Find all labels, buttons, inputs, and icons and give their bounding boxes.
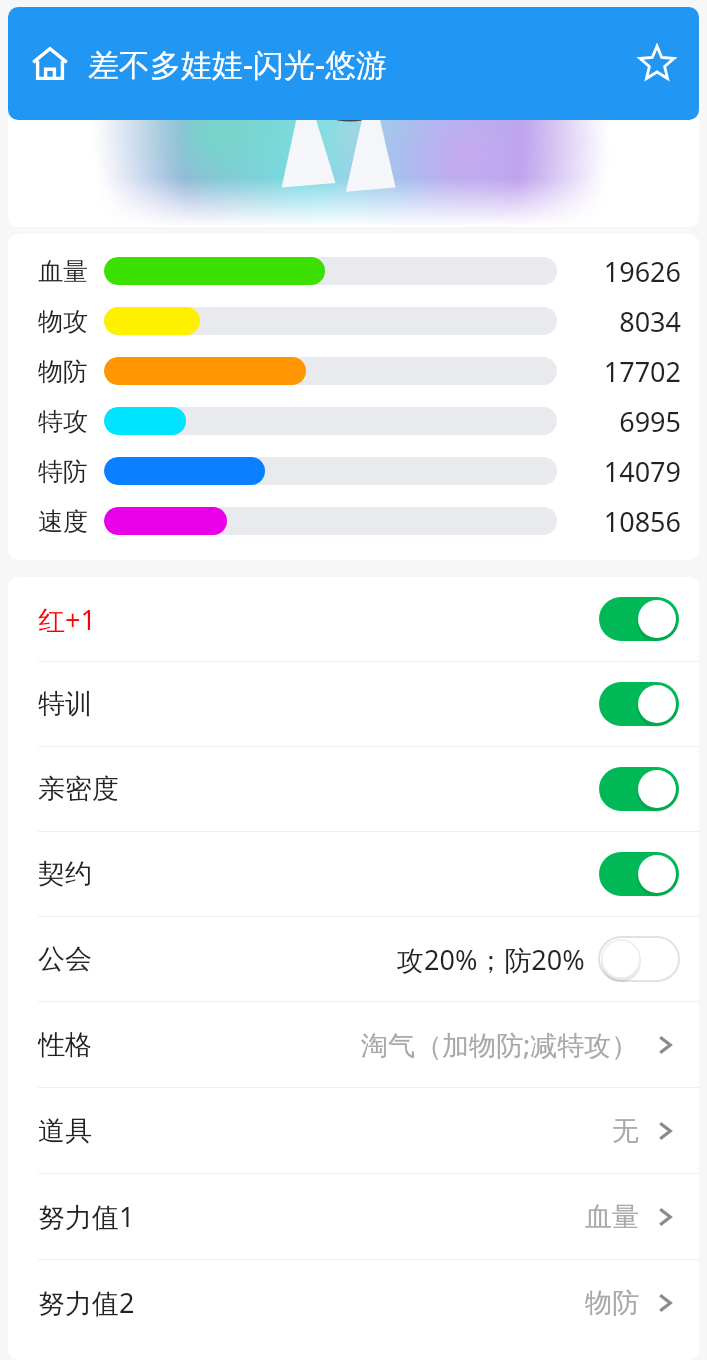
button[interactable]: On: [599, 597, 679, 641]
staticText: 14079: [571, 453, 681, 490]
staticText: 差不多娃娃-闪光-悠游: [88, 43, 633, 85]
staticText: 道具: [38, 1114, 92, 1148]
button[interactable]: 亲密度: [8, 747, 699, 831]
staticText: 契约: [38, 857, 92, 891]
button[interactable]: Favorite: [633, 40, 681, 88]
button[interactable]: 红+1: [8, 577, 699, 661]
button[interactable]: Off: [599, 937, 679, 981]
staticText: 血量: [38, 256, 88, 287]
button[interactable]: On: [599, 682, 679, 726]
staticText: 性格: [38, 1028, 92, 1062]
staticText: 8034: [571, 303, 681, 340]
staticText: 物攻: [38, 306, 88, 337]
button[interactable]: On: [599, 852, 679, 896]
staticText: 无: [612, 1114, 639, 1148]
staticText: 血量: [585, 1200, 639, 1234]
button[interactable]: 努力值2: [8, 1260, 699, 1345]
staticText: 特防: [38, 456, 88, 487]
button[interactable]: Home: [26, 40, 74, 88]
staticText: 亲密度: [38, 772, 119, 806]
staticText: 红+1: [38, 601, 96, 638]
staticText: 淘气（加物防;减特攻）: [361, 1026, 639, 1063]
button[interactable]: 契约: [8, 832, 699, 916]
staticText: 速度: [38, 506, 88, 537]
button[interactable]: 性格: [8, 1002, 699, 1087]
button[interactable]: 特训: [8, 662, 699, 746]
staticText: 6995: [571, 403, 681, 440]
staticText: 19626: [571, 253, 681, 290]
staticText: 努力值1: [38, 1198, 135, 1235]
button[interactable]: 道具: [8, 1088, 699, 1173]
staticText: 物防: [38, 356, 88, 387]
staticText: 特攻: [38, 406, 88, 437]
button[interactable]: On: [599, 767, 679, 811]
staticText: 17702: [571, 353, 681, 390]
staticText: 10856: [571, 503, 681, 540]
staticText: 攻20%；防20%: [397, 941, 585, 978]
staticText: 物防: [585, 1286, 639, 1320]
button[interactable]: 努力值1: [8, 1174, 699, 1259]
staticText: 特训: [38, 687, 92, 721]
staticText: 公会: [38, 942, 92, 976]
button[interactable]: 公会: [8, 917, 699, 1001]
staticText: 努力值2: [38, 1284, 135, 1321]
